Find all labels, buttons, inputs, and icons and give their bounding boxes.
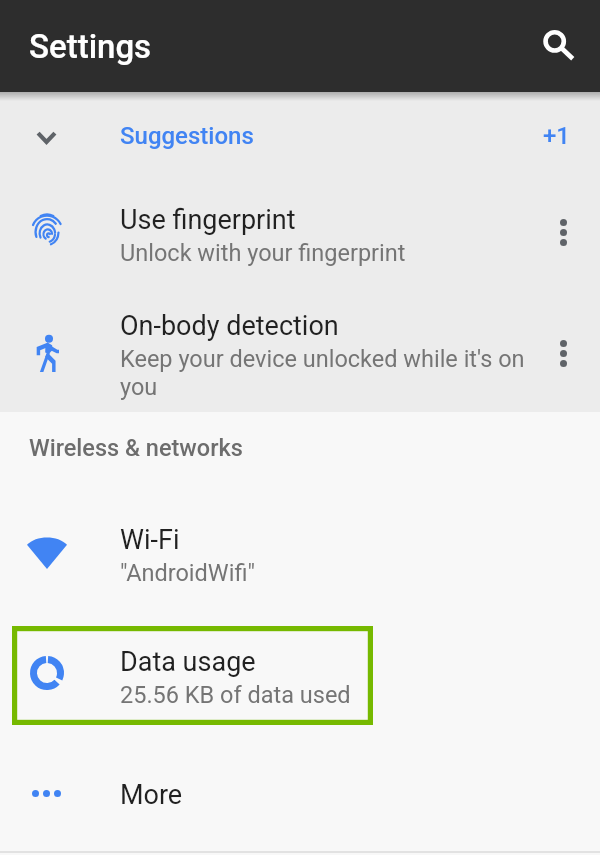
staticText: Data usage	[120, 646, 256, 678]
staticText: Wireless & networks	[29, 434, 243, 462]
button[interactable]: Use fingerprint	[0, 182, 600, 283]
staticText: On-body detection	[120, 310, 339, 342]
button[interactable]: On-body detection	[0, 282, 600, 412]
staticText: Settings	[29, 27, 152, 66]
button[interactable]: Wi-Fi	[0, 506, 600, 604]
staticText: 25.56 KB of data used	[120, 681, 351, 709]
staticText: More	[120, 779, 183, 811]
button[interactable]: Data usage	[0, 628, 600, 726]
staticText: Unlock with your fingerprint	[120, 239, 406, 267]
staticText: Suggestions	[120, 122, 254, 150]
button[interactable]: More options	[540, 330, 586, 376]
staticText: Keep your device unlocked while it's on …	[120, 345, 532, 401]
staticText: "AndroidWifi"	[120, 559, 255, 587]
button[interactable]: More	[0, 753, 600, 837]
staticText: Use fingerprint	[120, 204, 296, 236]
button[interactable]: Search	[532, 19, 586, 73]
button[interactable]: More options	[540, 209, 586, 255]
staticText: +1	[543, 122, 570, 150]
button[interactable]: Suggestions	[0, 96, 600, 181]
staticText: Wi-Fi	[120, 524, 180, 556]
